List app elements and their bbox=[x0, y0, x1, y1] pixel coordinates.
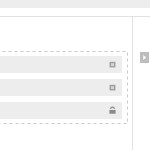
other: Locked item bbox=[109, 107, 116, 114]
button[interactable]: Expand panel bbox=[140, 52, 149, 63]
other: Item options bbox=[109, 84, 116, 91]
button[interactable]: Item options bbox=[0, 79, 122, 96]
button[interactable]: Locked item bbox=[0, 102, 122, 119]
button[interactable]: Item options bbox=[0, 56, 122, 73]
other: Item options bbox=[109, 61, 116, 68]
